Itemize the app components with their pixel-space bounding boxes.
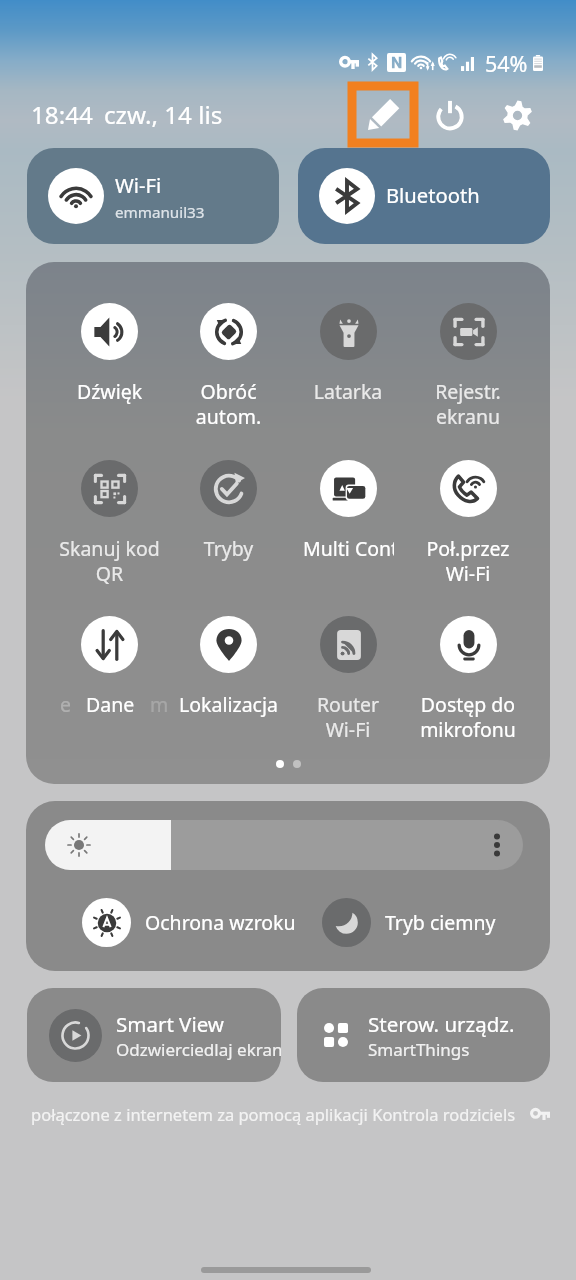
button[interactable]: Ochrona wzroku	[82, 898, 296, 947]
staticText: połączone z internetem za pomocą aplikac…	[31, 1103, 516, 1125]
staticText: e	[60, 691, 71, 718]
staticText: Smart View	[116, 1010, 224, 1038]
staticText: Bluetooth	[386, 181, 480, 209]
staticText: m	[150, 691, 169, 718]
button[interactable]: Dźwięk	[50, 303, 169, 405]
staticText: Dane	[86, 691, 135, 718]
staticText: Router Wi-Fi	[288, 691, 408, 742]
button[interactable]: Power	[424, 89, 476, 141]
button[interactable]: Edit quick settings	[348, 82, 418, 147]
staticText: czw., 14 lis	[104, 98, 223, 131]
staticText: Dźwięk	[50, 378, 169, 405]
staticText: Latarka	[288, 378, 408, 405]
staticText: Ochrona wzroku	[145, 909, 296, 936]
staticText: Tryb ciemny	[385, 909, 496, 936]
button[interactable]: Router Wi-Fi	[288, 616, 408, 742]
button[interactable]: Settings	[491, 89, 543, 141]
staticText: Dostęp do mikrofonu	[408, 691, 528, 742]
staticText: Poł.przez Wi-Fi	[408, 535, 528, 586]
button[interactable]: Tryb ciemny	[322, 898, 496, 947]
button[interactable]: Skanuj kod QR	[50, 460, 169, 586]
staticText: 18:44	[31, 98, 93, 131]
button[interactable]: Multi Control	[288, 460, 408, 562]
button[interactable]: Dostęp do mikrofonu	[408, 616, 528, 742]
button[interactable]: Brightness	[45, 820, 523, 870]
staticText: Lokalizacja	[169, 691, 288, 718]
button[interactable]: Bluetooth	[298, 148, 550, 244]
staticText: Sterow. urządz.	[368, 1010, 515, 1038]
staticText: Tryby	[169, 535, 288, 562]
staticText: Odzwierciedlaj ekran	[116, 1038, 281, 1061]
staticText: Wi-Fi	[115, 171, 162, 199]
button[interactable]: Wi-Fi	[27, 148, 279, 244]
button[interactable]: Rejestr. ekranu	[408, 303, 528, 429]
staticText: 54%	[485, 49, 528, 78]
button[interactable]: Tryby	[169, 460, 288, 562]
button[interactable]: Latarka	[288, 303, 408, 405]
staticText: Rejestr. ekranu	[408, 378, 528, 429]
button[interactable]: Sterow. urządz.	[297, 988, 550, 1082]
staticText: Skanuj kod QR	[50, 535, 169, 586]
staticText: SmartThings	[368, 1038, 470, 1061]
button[interactable]: Poł.przez Wi-Fi	[408, 460, 528, 586]
staticText: Multi Control	[303, 535, 394, 562]
staticText: Obróć autom.	[169, 378, 288, 429]
button[interactable]: Lokalizacja	[169, 616, 288, 718]
button[interactable]: e	[50, 616, 169, 718]
staticText: emmanuil33	[115, 202, 205, 223]
button[interactable]: Smart View	[27, 988, 281, 1082]
button[interactable]: Obróć autom.	[169, 303, 288, 429]
